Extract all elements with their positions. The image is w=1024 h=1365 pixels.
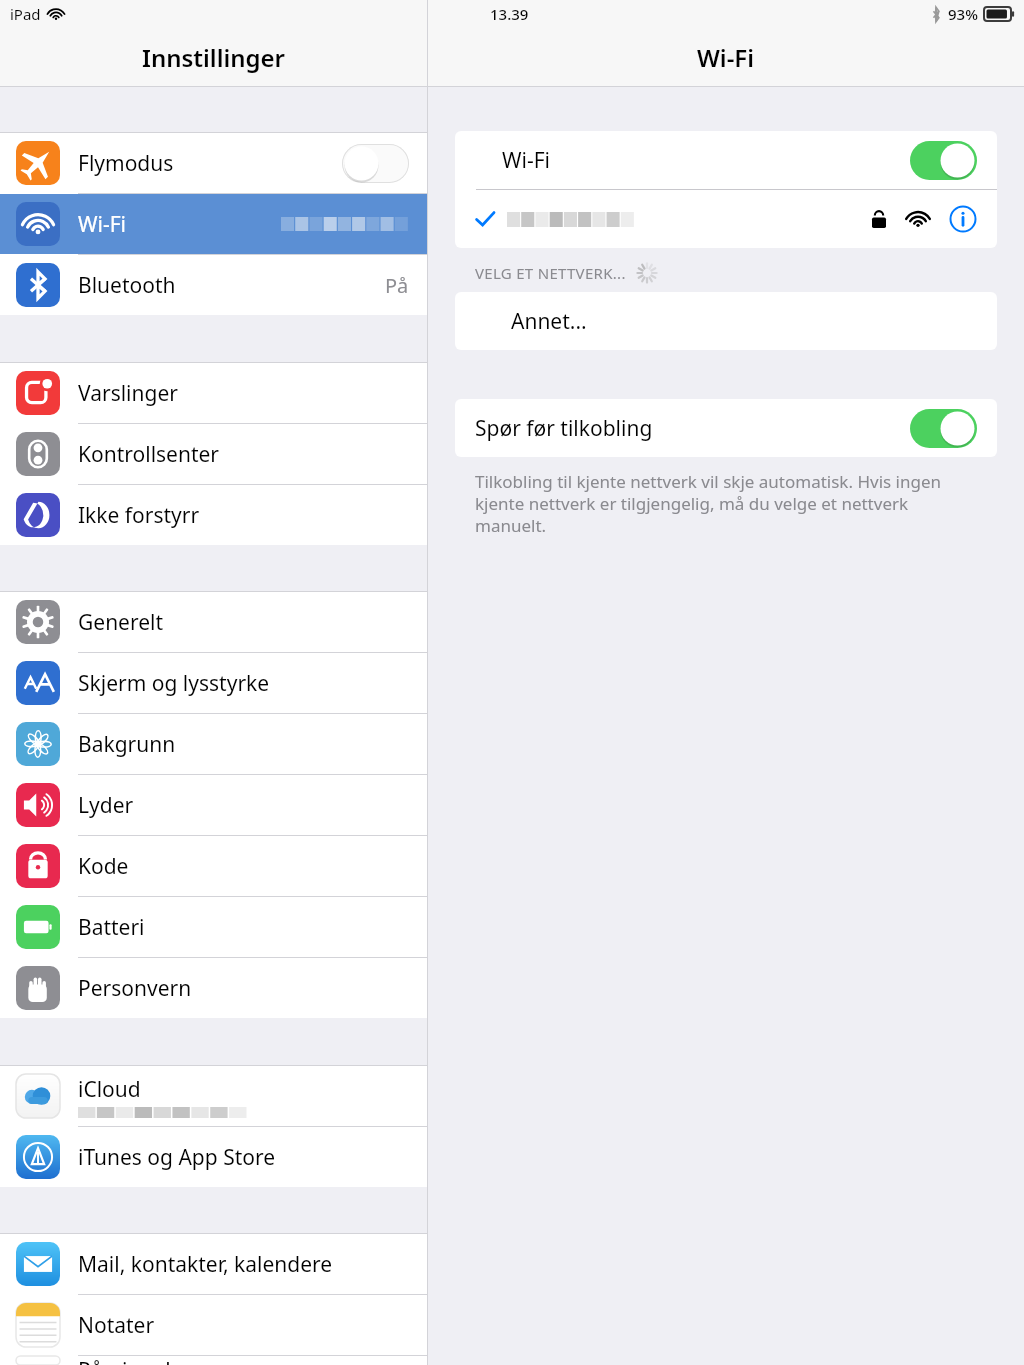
button[interactable]: Network info xyxy=(949,205,977,233)
button[interactable]: Mail, kontakter, kalendere xyxy=(0,1234,427,1295)
button[interactable]: Skjerm og lysstyrke xyxy=(0,653,427,714)
button[interactable]: Wi-Fi xyxy=(0,194,427,255)
staticText: Skjerm og lysstyrke xyxy=(78,669,270,698)
staticText: Bluetooth xyxy=(78,271,176,300)
staticText: VELG ET NETTVERK... xyxy=(475,263,626,283)
button[interactable]: Personvern xyxy=(0,958,427,1018)
button[interactable]: Batteri xyxy=(0,897,427,958)
staticText: Tilkobling til kjente nettverk vil skje … xyxy=(475,470,969,537)
button[interactable]: Off xyxy=(342,144,409,183)
staticText: Flymodus xyxy=(78,149,174,178)
button[interactable]: iCloud xyxy=(0,1066,427,1127)
button[interactable]: Bluetooth xyxy=(0,255,427,315)
staticText: Wi-Fi xyxy=(78,210,127,239)
staticText: iCloud xyxy=(78,1075,141,1104)
staticText: Personvern xyxy=(78,974,192,1003)
button[interactable]: Påminnelser xyxy=(0,1356,427,1365)
button[interactable]: Varslinger xyxy=(0,363,427,424)
button[interactable]: Network info xyxy=(455,190,997,248)
staticText: Annet... xyxy=(511,307,587,336)
button[interactable]: Ikke forstyrr xyxy=(0,485,427,545)
button[interactable]: Spør før tilkobling xyxy=(455,399,997,457)
button[interactable]: Wi-Fi xyxy=(455,131,997,189)
staticText: Varslinger xyxy=(78,379,178,408)
button[interactable]: On xyxy=(910,141,977,180)
staticText: Wi-Fi xyxy=(697,41,755,74)
staticText: Mail, kontakter, kalendere xyxy=(78,1250,333,1279)
staticText: Bakgrunn xyxy=(78,730,176,759)
staticText: Lyder xyxy=(78,791,134,820)
staticText: Innstillinger xyxy=(142,41,286,74)
staticText: Wi-Fi xyxy=(502,146,910,175)
button[interactable]: Generelt xyxy=(0,592,427,653)
button[interactable]: Annet... xyxy=(455,292,997,350)
staticText: iPad xyxy=(10,4,41,24)
staticText: 93% xyxy=(948,4,978,24)
staticText: Batteri xyxy=(78,913,145,942)
button[interactable]: iTunes og App Store xyxy=(0,1127,427,1187)
staticText: Kode xyxy=(78,852,129,881)
button[interactable]: Lyder xyxy=(0,775,427,836)
staticText: Notater xyxy=(78,1311,155,1340)
staticText: Generelt xyxy=(78,608,164,637)
button[interactable]: Kontrollsenter xyxy=(0,424,427,485)
button[interactable]: Flymodus xyxy=(0,133,427,194)
button[interactable]: Kode xyxy=(0,836,427,897)
button[interactable]: Notater xyxy=(0,1295,427,1356)
staticText: Spør før tilkobling xyxy=(475,414,910,443)
staticText: Kontrollsenter xyxy=(78,440,220,469)
staticText: På xyxy=(385,272,409,299)
staticText: 13.39 xyxy=(490,4,529,24)
staticText: Ikke forstyrr xyxy=(78,501,200,530)
button[interactable]: On xyxy=(910,409,977,448)
staticText: Påminnelser xyxy=(78,1356,202,1365)
staticText: iTunes og App Store xyxy=(78,1143,276,1172)
button[interactable]: Bakgrunn xyxy=(0,714,427,775)
